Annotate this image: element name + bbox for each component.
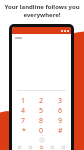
staticText: Your landline follows you <box>4 3 80 11</box>
button[interactable]: 4 <box>16 106 31 116</box>
button[interactable]: More <box>60 144 67 150</box>
staticText: everywhere! <box>23 11 61 19</box>
staticText: 7 <box>21 116 26 126</box>
button[interactable]: Speed dial <box>16 144 23 150</box>
button[interactable]: 3 <box>53 96 68 106</box>
button[interactable]: Voicemail <box>49 144 56 150</box>
button[interactable]: 7 <box>16 116 31 126</box>
staticText: 3 <box>58 96 63 106</box>
staticText: 1 <box>21 96 26 106</box>
staticText: * <box>22 126 26 136</box>
button[interactable]: # <box>53 126 68 136</box>
staticText: 9 <box>58 116 63 126</box>
staticText: 4 <box>21 106 26 116</box>
button[interactable]: 9 <box>53 116 68 126</box>
button[interactable]: Recents <box>27 144 34 150</box>
button[interactable]: 0 <box>34 126 49 136</box>
staticText: 2 <box>39 96 44 106</box>
button[interactable]: Contacts <box>38 144 45 150</box>
staticText: 8 <box>39 116 44 126</box>
staticText: 0 <box>39 126 44 136</box>
button[interactable]: 1 <box>16 96 31 106</box>
button[interactable]: Call <box>39 137 45 143</box>
button[interactable]: 5 <box>34 106 49 116</box>
staticText: # <box>58 126 63 136</box>
staticText: 5 <box>39 106 44 116</box>
staticText: 6 <box>58 106 63 116</box>
button[interactable]: 6 <box>53 106 68 116</box>
button[interactable]: 8 <box>34 116 49 126</box>
button[interactable]: 2 <box>34 96 49 106</box>
button[interactable]: * <box>16 126 31 136</box>
